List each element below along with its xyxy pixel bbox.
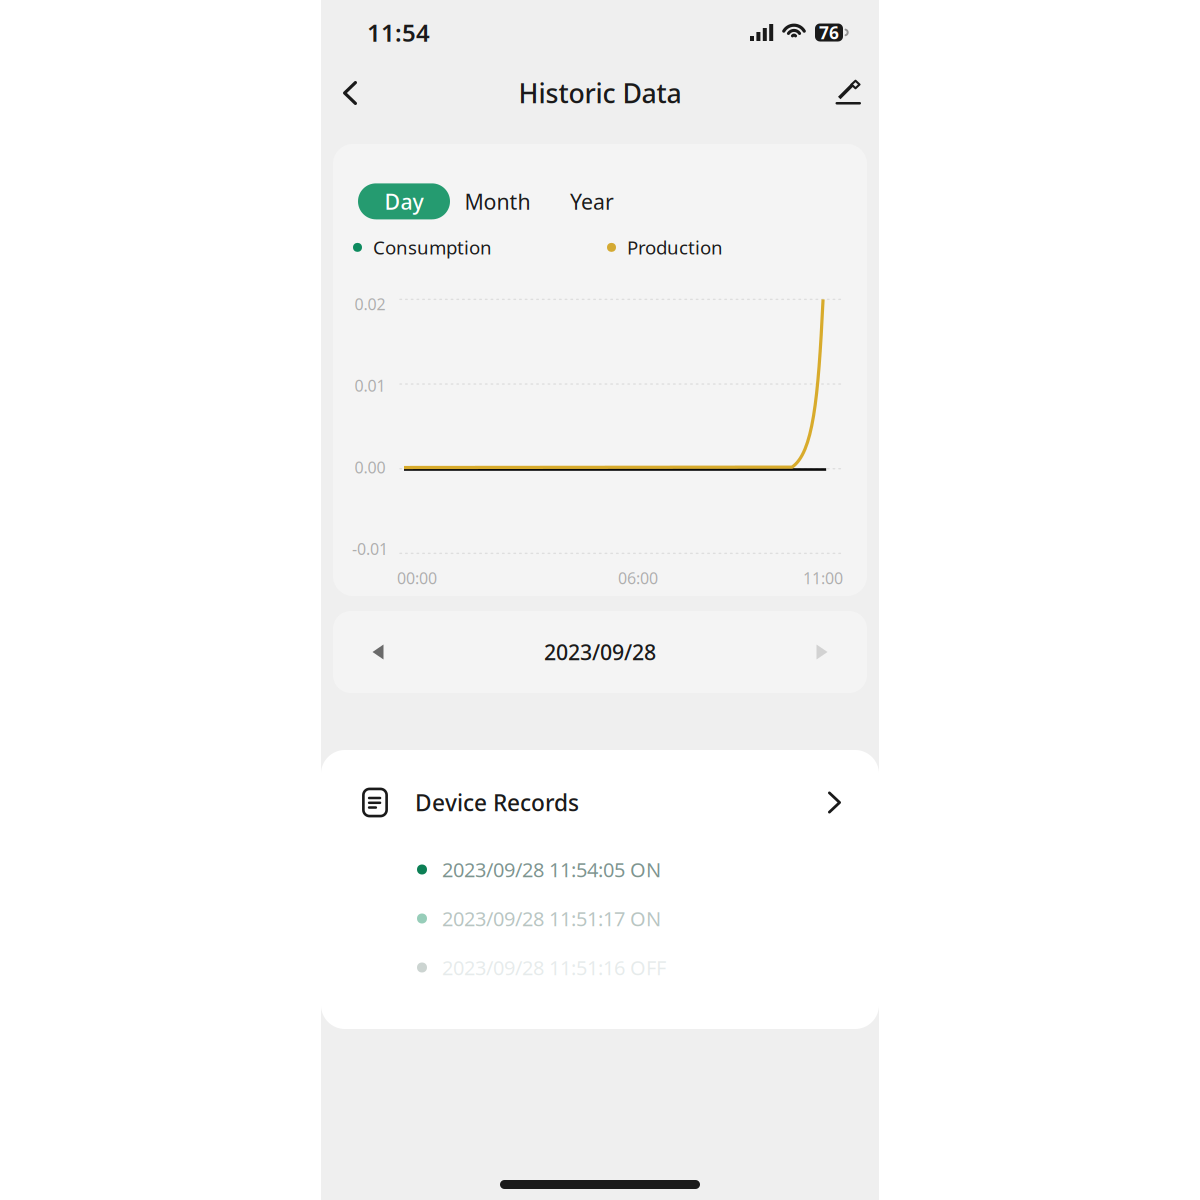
staticText: 11:54 [367, 17, 430, 48]
staticText: 2023/09/28 11:51:16 OFF [442, 954, 666, 981]
staticText: Day [384, 187, 423, 215]
staticText: 2023/09/28 [544, 638, 656, 666]
staticText: 2023/09/28 11:54:05 ON [442, 856, 661, 883]
button[interactable]: Edit [826, 71, 870, 115]
staticText: Year [570, 187, 614, 215]
staticText: 0.02 [354, 293, 385, 315]
staticText: 00:00 [397, 567, 437, 589]
button[interactable]: Next day [797, 627, 847, 677]
staticText: 0.01 [354, 375, 385, 396]
staticText: Consumption [373, 235, 492, 260]
staticText: 76 [819, 21, 839, 44]
staticText: Month [464, 187, 530, 215]
button[interactable]: Year [545, 183, 639, 219]
staticText: 2023/09/28 11:51:17 ON [442, 905, 661, 932]
button[interactable]: Previous day [353, 627, 403, 677]
staticText: Device Records [415, 787, 579, 817]
staticText: Historic Data [518, 75, 681, 111]
staticText: 11:00 [803, 567, 843, 589]
button[interactable]: Day [358, 183, 450, 219]
staticText: 06:00 [618, 567, 658, 589]
staticText: 0.00 [354, 456, 385, 478]
staticText: Production [627, 235, 723, 260]
button[interactable]: Month [450, 183, 545, 219]
staticText: -0.01 [352, 538, 388, 559]
button[interactable]: Device Records [321, 750, 879, 845]
button[interactable]: Back [328, 71, 372, 115]
